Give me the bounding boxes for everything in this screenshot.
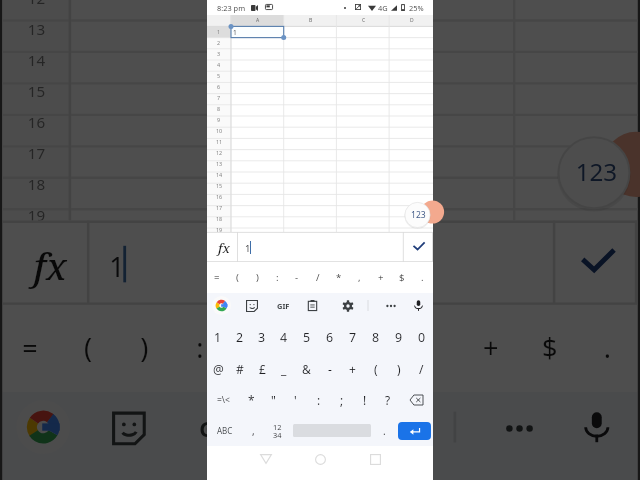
- button[interactable]: 5: [295, 322, 318, 353]
- button[interactable]: Space: [290, 415, 373, 446]
- button[interactable]: Settings: [382, 412, 415, 445]
- button[interactable]: 16: [207, 191, 231, 202]
- button[interactable]: @: [207, 353, 229, 384]
- button[interactable]: C: [337, 15, 390, 26]
- button[interactable]: Back: [256, 449, 276, 469]
- button[interactable]: ,: [349, 262, 370, 293]
- button[interactable]: GIF: [199, 414, 236, 442]
- button[interactable]: /: [410, 353, 433, 384]
- button[interactable]: 13: [2, 13, 70, 43]
- button[interactable]: 4: [207, 59, 231, 70]
- button[interactable]: Voice input: [413, 300, 424, 311]
- button[interactable]: 7: [341, 322, 364, 353]
- button[interactable]: .: [412, 262, 433, 293]
- button[interactable]: 0: [410, 322, 433, 353]
- button[interactable]: (: [364, 353, 387, 384]
- button[interactable]: ): [115, 305, 171, 392]
- button[interactable]: =\<: [207, 384, 240, 415]
- button[interactable]: ?: [376, 384, 399, 415]
- button[interactable]: .: [373, 415, 396, 446]
- button[interactable]: (: [59, 305, 115, 392]
- button[interactable]: 2: [229, 322, 251, 353]
- button[interactable]: 2: [207, 37, 231, 48]
- button[interactable]: More options: [385, 300, 397, 312]
- button[interactable]: 1: [207, 322, 229, 353]
- button[interactable]: (: [227, 262, 247, 293]
- button[interactable]: B: [284, 15, 337, 26]
- button[interactable]: D: [390, 15, 433, 26]
- button[interactable]: 16: [2, 105, 70, 136]
- button[interactable]: Clipboard: [307, 300, 318, 311]
- button[interactable]: 10: [207, 125, 231, 136]
- button[interactable]: Settings: [342, 300, 354, 312]
- button[interactable]: 8: [364, 322, 387, 353]
- button[interactable]: ': [284, 384, 307, 415]
- button[interactable]: GIF: [277, 301, 290, 311]
- button[interactable]: Stickers: [246, 300, 258, 312]
- button[interactable]: Accept: [404, 232, 433, 262]
- button[interactable]: :: [171, 305, 227, 392]
- button[interactable]: 5: [207, 70, 231, 81]
- button[interactable]: More options: [503, 412, 536, 445]
- button[interactable]: Number format: [562, 139, 629, 206]
- button[interactable]: 12: [265, 415, 290, 446]
- button[interactable]: -: [227, 305, 283, 392]
- button[interactable]: ;: [330, 384, 353, 415]
- button[interactable]: £: [251, 353, 273, 384]
- button[interactable]: &: [295, 353, 318, 384]
- button[interactable]: 12: [207, 147, 231, 158]
- button[interactable]: 15: [207, 180, 231, 191]
- button[interactable]: Clipboard: [283, 412, 314, 442]
- button[interactable]: $: [391, 262, 412, 293]
- button[interactable]: /: [283, 305, 342, 392]
- button[interactable]: *: [342, 305, 401, 392]
- button[interactable]: 11: [207, 136, 231, 147]
- button[interactable]: :: [267, 262, 287, 293]
- button[interactable]: 7: [379, 473, 444, 480]
- button[interactable]: Google: [212, 296, 231, 315]
- button[interactable]: 18: [207, 213, 231, 224]
- button[interactable]: 19: [2, 198, 70, 229]
- button[interactable]: Stickers: [112, 412, 146, 445]
- button[interactable]: 15: [2, 74, 70, 105]
- button[interactable]: Backspace: [399, 384, 433, 415]
- button[interactable]: $: [519, 305, 578, 392]
- button[interactable]: +: [370, 262, 391, 293]
- button[interactable]: 9: [207, 114, 231, 125]
- button[interactable]: Voice input: [581, 412, 612, 442]
- button[interactable]: 4: [273, 322, 295, 353]
- button[interactable]: 17: [2, 136, 70, 167]
- button[interactable]: *: [240, 384, 262, 415]
- button[interactable]: ): [387, 353, 410, 384]
- button[interactable]: *: [328, 262, 349, 293]
- button[interactable]: ABC: [207, 415, 242, 446]
- button[interactable]: #: [229, 353, 251, 384]
- button[interactable]: Recents: [365, 449, 385, 469]
- button[interactable]: 4: [188, 473, 250, 480]
- button[interactable]: +: [341, 353, 364, 384]
- button[interactable]: 6: [318, 322, 341, 353]
- button[interactable]: 19: [207, 224, 231, 235]
- button[interactable]: !: [353, 384, 376, 415]
- button[interactable]: ,: [242, 415, 265, 446]
- button[interactable]: 8: [207, 103, 231, 114]
- button[interactable]: +: [460, 305, 519, 392]
- button[interactable]: 9: [387, 322, 410, 353]
- button[interactable]: _: [273, 353, 295, 384]
- button[interactable]: ": [262, 384, 284, 415]
- button[interactable]: 3: [207, 48, 231, 59]
- button[interactable]: -: [318, 353, 341, 384]
- button[interactable]: 14: [2, 43, 70, 74]
- button[interactable]: Accept: [556, 220, 637, 305]
- button[interactable]: Number format: [406, 203, 430, 227]
- button[interactable]: -: [287, 262, 307, 293]
- button[interactable]: Google: [16, 400, 70, 454]
